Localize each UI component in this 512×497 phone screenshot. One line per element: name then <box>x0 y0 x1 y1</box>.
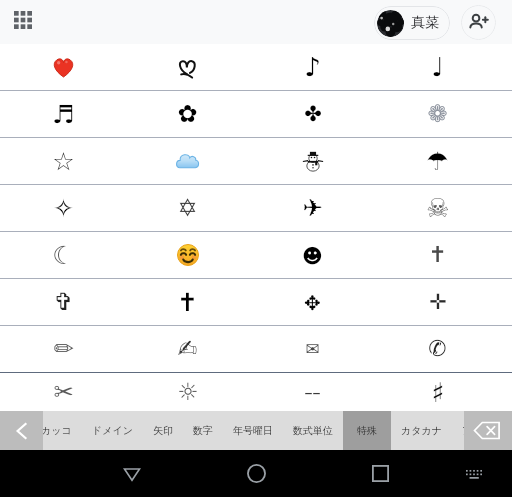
button[interactable]: ☂ <box>375 138 500 184</box>
staticText: 矢印 <box>153 424 173 437</box>
staticText: 数字 <box>193 424 213 437</box>
staticText: ✥ <box>304 291 321 314</box>
button[interactable]: ✝ <box>375 232 500 278</box>
button[interactable]: ☆ <box>1 138 125 184</box>
button[interactable] <box>250 138 375 184</box>
button[interactable] <box>125 44 250 90</box>
button[interactable]: ☾ <box>1 232 125 278</box>
button[interactable]: ✈ <box>250 185 375 231</box>
button[interactable]: ✧ <box>1 185 125 231</box>
staticText: ☠ <box>426 193 450 223</box>
staticText: ✿ <box>177 100 198 128</box>
button[interactable]: ☼ <box>125 373 250 411</box>
staticText: ✉ <box>305 339 320 359</box>
button[interactable]: 数字 <box>183 411 223 450</box>
button[interactable]: Add person <box>461 5 496 40</box>
button[interactable]: ドメイン <box>82 411 143 450</box>
button[interactable]: ✡ <box>125 185 250 231</box>
staticText: ♪ <box>304 52 321 82</box>
button[interactable]: 数式単位 <box>283 411 343 450</box>
button[interactable]: ✛ <box>375 279 500 325</box>
staticText: カッコ <box>43 424 72 437</box>
button[interactable] <box>125 232 250 278</box>
staticText: ✧ <box>53 194 74 223</box>
staticText: カタカナ <box>401 424 442 437</box>
button[interactable]: ♪ <box>250 44 375 90</box>
staticText: ♩ <box>431 52 444 82</box>
staticText: ✈ <box>302 194 323 222</box>
button[interactable]: Home <box>210 450 303 497</box>
button[interactable]: ♯ <box>375 373 500 411</box>
staticText: ☻ <box>302 244 323 267</box>
button[interactable]: カタカナ <box>391 411 452 450</box>
staticText: ☼ <box>177 378 199 406</box>
staticText: 真菜 <box>411 14 439 32</box>
button[interactable]: Back <box>85 450 178 497</box>
staticText: ✆ <box>428 336 447 362</box>
staticText: ✝ <box>177 288 198 317</box>
button[interactable]: Apps <box>5 2 41 38</box>
button[interactable]: ✉ <box>250 326 375 372</box>
staticText: ✡ <box>177 194 198 222</box>
staticText: –– <box>304 381 321 403</box>
button[interactable]: Previous page <box>0 411 43 450</box>
staticText: ✂ <box>53 378 74 406</box>
staticText: ✏ <box>53 335 74 363</box>
button[interactable]: ☠ <box>375 185 500 231</box>
button[interactable]: –– <box>250 373 375 411</box>
button[interactable]: ✏ <box>1 326 125 372</box>
button[interactable]: ☻ <box>250 232 375 278</box>
button[interactable]: ♬ <box>1 91 125 137</box>
staticText: ♯ <box>431 377 445 408</box>
staticText: ドメイン <box>92 424 133 437</box>
button[interactable]: Keyboard <box>438 450 510 497</box>
staticText: ✍ <box>177 335 198 363</box>
staticText: 特殊 <box>357 424 377 437</box>
button[interactable]: ✂ <box>1 373 125 411</box>
staticText: ✛ <box>429 290 447 314</box>
staticText: ✞ <box>53 288 74 316</box>
button[interactable]: 特殊 <box>343 411 391 450</box>
button[interactable]: ✿ <box>125 91 250 137</box>
button[interactable]: ❁ <box>375 91 500 137</box>
staticText: ☆ <box>52 147 75 176</box>
button[interactable]: ✞ <box>1 279 125 325</box>
button[interactable] <box>125 138 250 184</box>
button[interactable]: ✝ <box>125 279 250 325</box>
button[interactable]: ♩ <box>375 44 500 90</box>
button[interactable]: ✆ <box>375 326 500 372</box>
staticText: ☂ <box>426 147 449 176</box>
button[interactable]: Backspace <box>464 411 512 450</box>
button[interactable]: カッコ <box>43 411 82 450</box>
button[interactable]: 真菜 <box>374 6 450 40</box>
staticText: ❁ <box>427 100 448 128</box>
button[interactable]: ✥ <box>250 279 375 325</box>
staticText: ✤ <box>304 102 322 126</box>
button[interactable]: 年号曜日 <box>223 411 283 450</box>
staticText: ✝ <box>428 242 447 268</box>
staticText: ♬ <box>52 100 75 129</box>
button[interactable] <box>1 44 125 90</box>
staticText: 数式単位 <box>293 424 333 437</box>
staticText: 年号曜日 <box>233 424 273 437</box>
button[interactable]: 矢印 <box>143 411 183 450</box>
button[interactable]: Recent apps <box>334 450 427 497</box>
button[interactable]: ✍ <box>125 326 250 372</box>
staticText: ☾ <box>52 241 75 270</box>
button[interactable]: ✤ <box>250 91 375 137</box>
